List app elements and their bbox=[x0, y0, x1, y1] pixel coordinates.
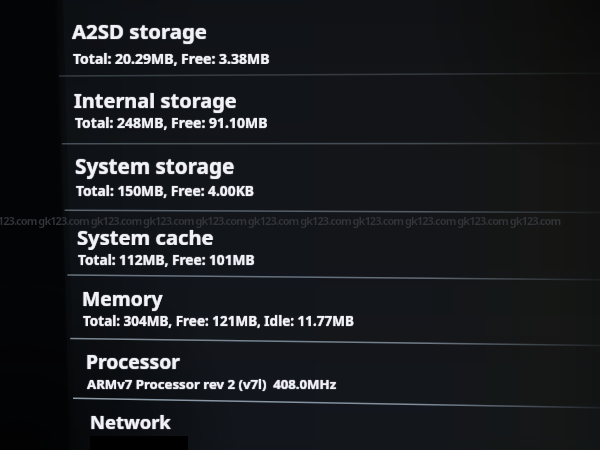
staticText: Total: 20.29MB, Free: 3.38MB bbox=[72, 49, 269, 68]
button[interactable] bbox=[58, 341, 600, 402]
staticText: ARMv7 Processor rev 2 (v7l) 408.0MHz bbox=[87, 376, 337, 394]
staticText: Total: 112MB, Free: 101MB bbox=[78, 250, 255, 269]
button[interactable] bbox=[58, 74, 600, 143]
staticText: Total: 248MB, Free: 91.10MB bbox=[75, 113, 268, 132]
staticText: Internal storage bbox=[73, 87, 236, 114]
staticText: A2SD storage bbox=[73, 17, 209, 45]
staticText: Network bbox=[90, 408, 171, 433]
staticText: Total: 304MB, Free: 121MB, Idle: 11.77MB bbox=[83, 311, 354, 329]
staticText: Network bbox=[91, 409, 172, 434]
staticText: Internal storage bbox=[74, 86, 237, 113]
staticText: Internal storage bbox=[74, 88, 237, 115]
staticText: Total: 150MB, Free: 4.00KB bbox=[75, 181, 253, 200]
staticText: Total: 20.29MB, Free: 3.38MB bbox=[73, 49, 270, 68]
staticText: Memory bbox=[82, 284, 163, 310]
staticText: Total: 20.29MB, Free: 3.38MB bbox=[73, 48, 270, 67]
staticText: System cache bbox=[76, 223, 213, 251]
staticText: Memory bbox=[82, 286, 163, 312]
staticText: Total: 150MB, Free: 4.00KB bbox=[76, 182, 254, 201]
staticText: Processor bbox=[86, 348, 180, 374]
staticText: Total: 112MB, Free: 101MB bbox=[78, 251, 255, 270]
staticText: ARMv7 Processor rev 2 (v7l) 408.0MHz bbox=[87, 375, 337, 393]
staticText: Processor bbox=[85, 348, 179, 374]
staticText: Total: 150MB, Free: 4.00KB bbox=[76, 181, 254, 200]
staticText: System storage bbox=[75, 152, 235, 180]
staticText: Total: 248MB, Free: 91.10MB bbox=[74, 113, 267, 132]
staticText: gk123.com gk123.com gk123.com gk123.com … bbox=[0, 213, 586, 228]
button[interactable] bbox=[58, 277, 600, 341]
staticText: Total: 150MB, Free: 4.00KB bbox=[77, 181, 255, 200]
staticText: Total: 304MB, Free: 121MB, Idle: 11.77MB bbox=[83, 312, 354, 330]
staticText: ARMv7 Processor rev 2 (v7l) 408.0MHz bbox=[86, 375, 336, 393]
staticText: System cache bbox=[77, 223, 214, 251]
staticText: Total: 248MB, Free: 91.10MB bbox=[75, 113, 268, 132]
staticText: System cache bbox=[78, 223, 215, 251]
staticText: Total: 304MB, Free: 121MB, Idle: 11.77MB bbox=[82, 312, 353, 330]
staticText: Total: 304MB, Free: 121MB, Idle: 11.77MB bbox=[83, 313, 354, 331]
staticText: Total: 112MB, Free: 101MB bbox=[77, 250, 254, 269]
staticText: Memory bbox=[82, 285, 163, 311]
staticText: Total: 248MB, Free: 91.10MB bbox=[75, 114, 268, 133]
staticText: Total: 248MB, Free: 91.10MB bbox=[75, 112, 268, 131]
staticText: Memory bbox=[81, 285, 162, 311]
staticText: System cache bbox=[77, 222, 214, 250]
staticText: System storage bbox=[75, 153, 235, 181]
staticText: System cache bbox=[77, 223, 214, 251]
staticText: ARMv7 Processor rev 2 (v7l) 408.0MHz bbox=[88, 375, 338, 393]
staticText: Total: 304MB, Free: 121MB, Idle: 11.77MB bbox=[83, 312, 354, 330]
button[interactable] bbox=[58, 143, 600, 211]
staticText: System storage bbox=[75, 151, 235, 179]
staticText: Total: 20.29MB, Free: 3.38MB bbox=[74, 49, 271, 68]
staticText: Total: 112MB, Free: 101MB bbox=[78, 249, 255, 268]
staticText: Network bbox=[90, 409, 171, 434]
staticText: A2SD storage bbox=[71, 17, 207, 45]
staticText: Processor bbox=[86, 349, 180, 375]
staticText: ARMv7 Processor rev 2 (v7l) 408.0MHz bbox=[87, 374, 337, 392]
staticText: Total: 150MB, Free: 4.00KB bbox=[76, 180, 254, 199]
staticText: Internal storage bbox=[74, 87, 237, 114]
staticText: A2SD storage bbox=[72, 17, 208, 45]
staticText: Network bbox=[90, 410, 171, 435]
staticText: Processor bbox=[86, 347, 180, 373]
staticText: A2SD storage bbox=[72, 18, 208, 46]
staticText: Internal storage bbox=[74, 87, 237, 114]
staticText: System storage bbox=[76, 152, 236, 180]
staticText: Processor bbox=[87, 348, 181, 374]
button[interactable] bbox=[58, 6, 600, 74]
staticText: Network bbox=[89, 409, 170, 434]
staticText: Total: 20.29MB, Free: 3.38MB bbox=[73, 49, 270, 68]
staticText: Memory bbox=[82, 285, 163, 311]
staticText: Total: 112MB, Free: 101MB bbox=[79, 250, 256, 269]
staticText: A2SD storage bbox=[72, 16, 208, 44]
button[interactable] bbox=[58, 402, 600, 450]
button[interactable] bbox=[58, 211, 600, 277]
staticText: System storage bbox=[74, 152, 234, 180]
